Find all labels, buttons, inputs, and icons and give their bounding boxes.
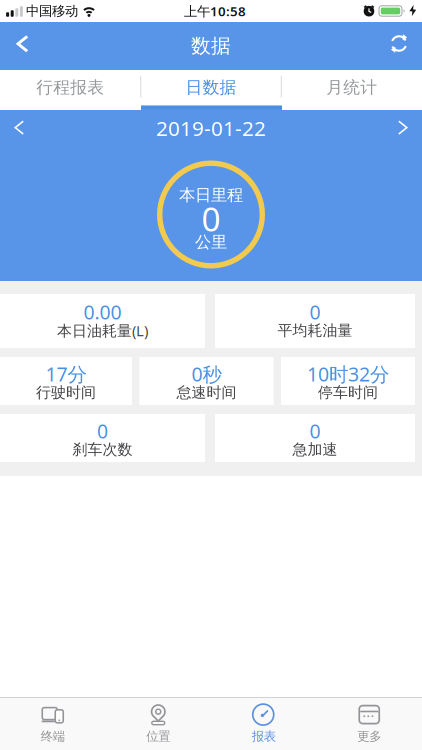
staticText: 数据 (191, 34, 231, 58)
staticText: 17分 (45, 361, 86, 387)
staticText: 上午10:58 (184, 2, 246, 20)
staticText: 0 (97, 418, 108, 444)
staticText: 0秒 (191, 361, 221, 387)
staticText: 10时32分 (307, 361, 389, 387)
button[interactable]: 前一天 (0, 110, 40, 146)
button[interactable]: 终端 (0, 699, 105, 749)
staticText: 0 (201, 196, 220, 241)
staticText: 0 (309, 299, 320, 325)
staticText: 本日油耗量(L) (57, 320, 148, 341)
button[interactable]: 日数据 (141, 70, 281, 105)
staticText: 2019-01-22 (156, 114, 266, 142)
staticText: 终端 (41, 729, 65, 744)
staticText: 报表 (252, 729, 276, 744)
staticText: 位置 (146, 729, 170, 744)
staticText: 日数据 (185, 77, 236, 98)
button[interactable]: 更多 (316, 699, 422, 749)
staticText: 中国移动 (26, 3, 78, 19)
staticText: 本日里程 (179, 185, 243, 205)
staticText: 行程报表 (36, 77, 104, 98)
button[interactable]: 刷新 (377, 22, 420, 65)
button[interactable]: 位置 (105, 699, 211, 749)
staticText: 公里 (195, 232, 227, 252)
button[interactable]: 行程报表 (0, 70, 140, 105)
staticText: 停车时间 (318, 383, 378, 402)
staticText: 刹车次数 (72, 440, 132, 459)
staticText: 行驶时间 (36, 383, 96, 402)
staticText: 0 (309, 418, 320, 444)
staticText: 怠速时间 (176, 383, 236, 402)
button[interactable]: 报表 (211, 699, 316, 749)
button[interactable]: 返回 (1, 21, 44, 67)
button[interactable]: 月统计 (282, 70, 422, 105)
staticText: 0.00 (83, 299, 121, 325)
button[interactable]: 后一天 (382, 110, 422, 146)
staticText: 月统计 (326, 77, 377, 98)
staticText: 急加速 (292, 440, 337, 459)
staticText: 更多 (357, 729, 381, 744)
staticText: 平均耗油量 (277, 321, 352, 340)
